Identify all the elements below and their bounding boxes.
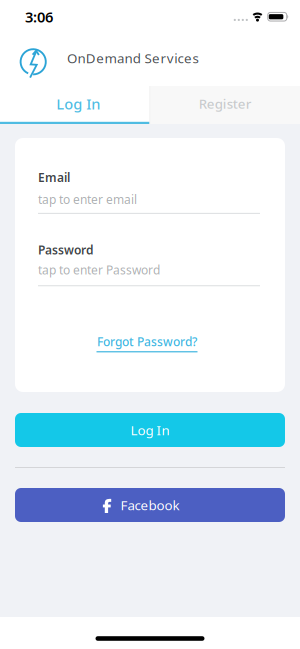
- button[interactable]: Facebook: [15, 488, 285, 522]
- staticText: Forgot Password?: [97, 334, 197, 350]
- staticText: tap to enter email: [38, 191, 137, 207]
- staticText: Password: [38, 242, 94, 258]
- staticText: OnDemand Services: [67, 49, 198, 67]
- button[interactable]: tap to enter Password: [38, 262, 260, 286]
- staticText: tap to enter Password: [38, 262, 160, 278]
- staticText: Email: [38, 169, 70, 185]
- staticText: Log In: [56, 94, 100, 114]
- staticText: Log In: [130, 421, 169, 439]
- button[interactable]: Log In: [15, 413, 285, 447]
- staticText: 3:06: [25, 7, 53, 26]
- staticText: Register: [199, 95, 252, 112]
- button[interactable]: Log In: [0, 86, 149, 124]
- staticText: Facebook: [120, 496, 179, 514]
- button[interactable]: Forgot Password?: [99, 334, 200, 352]
- button[interactable]: Register: [150, 86, 300, 124]
- button[interactable]: tap to enter email: [38, 191, 260, 214]
